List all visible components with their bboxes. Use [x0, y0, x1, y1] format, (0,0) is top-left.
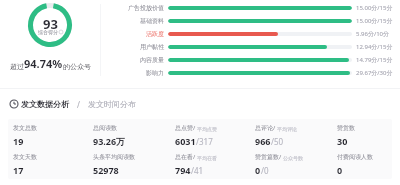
button[interactable]: 发文天数	[13, 153, 88, 176]
staticText: 0	[255, 164, 261, 176]
staticText: 基础资料	[140, 17, 164, 25]
button[interactable]: 广告投放价值	[108, 3, 400, 12]
staticText: 发文时间分布	[88, 99, 136, 109]
staticText: 平均点赞	[197, 126, 217, 132]
button[interactable]: 内容质量	[108, 55, 400, 64]
staticText: 6031	[175, 135, 196, 147]
staticText: 平均评论	[277, 126, 297, 132]
staticText: /	[193, 124, 197, 132]
staticText: /	[271, 136, 274, 147]
staticText: 19	[13, 135, 24, 147]
staticText: 15.00分/15分	[356, 4, 393, 12]
staticText: 影响力	[146, 69, 164, 77]
staticText: 超过	[10, 62, 24, 71]
button[interactable]: 基础资料	[108, 16, 400, 25]
staticText: 总阅读数	[93, 124, 117, 132]
staticText: 5.96分/10分	[356, 30, 390, 38]
staticText: 发文数据分析	[21, 99, 69, 109]
staticText: 赞赏篇数	[255, 153, 279, 161]
staticText: /	[191, 165, 194, 176]
staticText: 发文总数	[13, 124, 37, 132]
staticText: 41	[194, 165, 204, 176]
button[interactable]: 影响力	[108, 68, 400, 77]
button[interactable]: 总评论	[255, 124, 332, 147]
staticText: 93.26万	[93, 135, 126, 147]
staticText: /	[196, 136, 199, 147]
button[interactable]: 发文时间分布	[88, 99, 136, 109]
button[interactable]: 赞赏数	[337, 124, 392, 147]
staticText: 52978	[93, 164, 119, 176]
staticText: 平均在看	[197, 155, 217, 161]
button[interactable]: 发文总数	[13, 124, 88, 147]
staticText: 总在看	[175, 153, 193, 161]
button[interactable]: 赞赏篇数	[255, 153, 332, 176]
staticText: 广告投放价值	[128, 4, 164, 12]
staticText: /	[193, 153, 197, 161]
staticText: 活跃度	[146, 30, 164, 38]
button[interactable]: 头条平均阅读数	[93, 153, 170, 176]
button[interactable]: Analytics	[10, 99, 69, 109]
button[interactable]: 付费阅读人数	[337, 153, 392, 176]
staticText: 赞赏数	[337, 124, 355, 132]
button[interactable]: 总阅读数	[93, 124, 170, 147]
staticText: 公众号数	[283, 155, 303, 161]
staticText: /	[77, 99, 80, 110]
staticText: 794	[175, 164, 191, 176]
staticText: 94.74%	[24, 56, 63, 71]
staticText: 0	[264, 165, 269, 176]
staticText: 发文天数	[13, 153, 37, 161]
staticText: 15.00分/15分	[356, 17, 393, 25]
other: Analytics	[10, 100, 18, 108]
staticText: 29.67分/30分	[356, 69, 393, 77]
staticText: 综合得分	[38, 29, 58, 35]
button[interactable]: 总在看	[175, 153, 250, 176]
staticText: /	[273, 124, 277, 132]
staticText: 14.79分/15分	[356, 56, 393, 64]
staticText: 12.94分/15分	[356, 43, 393, 51]
staticText: 付费阅读人数	[337, 153, 373, 161]
staticText: 头条平均阅读数	[93, 153, 135, 161]
staticText: 50	[274, 136, 284, 147]
staticText: 的公众号	[63, 62, 91, 71]
staticText: 30	[337, 135, 348, 147]
staticText: 总评论	[255, 124, 273, 132]
staticText: /	[261, 165, 264, 176]
button[interactable]: 活跃度	[108, 29, 400, 38]
staticText: 内容质量	[140, 56, 164, 64]
staticText: 0	[337, 164, 343, 176]
staticText: 17	[13, 164, 24, 176]
button[interactable]: 总点赞	[175, 124, 250, 147]
staticText: 用户黏性	[140, 43, 164, 51]
staticText: 93	[43, 15, 58, 29]
staticText: 966	[255, 135, 271, 147]
staticText: /	[279, 153, 283, 161]
button[interactable]: 用户黏性	[108, 42, 400, 51]
staticText: 317	[199, 136, 213, 147]
staticText: 总点赞	[175, 124, 193, 132]
